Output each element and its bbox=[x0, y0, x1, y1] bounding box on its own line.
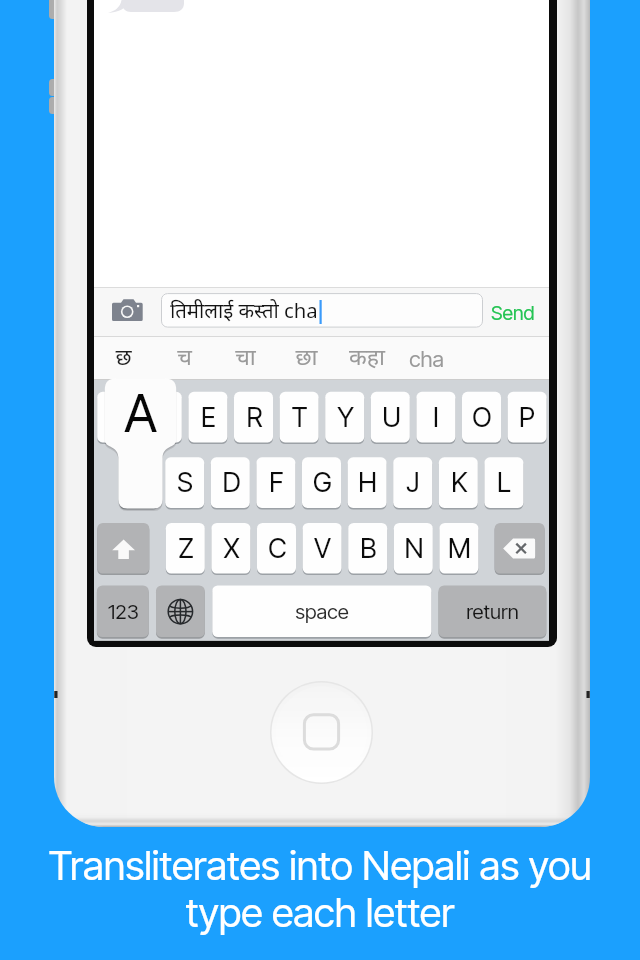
button[interactable]: Key A bbox=[120, 457, 159, 508]
staticText: च bbox=[177, 344, 192, 374]
staticText: T bbox=[291, 401, 308, 434]
button[interactable]: Return bbox=[438, 586, 546, 638]
button[interactable]: Suggestion chhaa bbox=[277, 337, 338, 380]
staticText: U bbox=[382, 401, 401, 434]
button[interactable]: Key E bbox=[188, 392, 227, 443]
button[interactable]: Key P bbox=[508, 392, 547, 443]
staticText: N bbox=[404, 532, 424, 565]
staticText: छा bbox=[295, 344, 318, 374]
button[interactable]: Send bbox=[487, 294, 546, 328]
button[interactable]: Backspace bbox=[495, 523, 545, 574]
button[interactable]: Key X bbox=[211, 523, 250, 574]
staticText: D bbox=[222, 466, 241, 499]
staticText: H bbox=[358, 466, 377, 499]
button[interactable]: Suggestion kaha bbox=[338, 337, 399, 380]
staticText: Y bbox=[337, 401, 354, 434]
button[interactable]: Key C bbox=[257, 523, 296, 574]
button[interactable]: Shift bbox=[97, 523, 149, 574]
staticText: K bbox=[451, 466, 468, 499]
staticText: A bbox=[124, 382, 157, 445]
button[interactable]: Key U bbox=[371, 392, 410, 443]
button[interactable]: Key J bbox=[393, 457, 432, 508]
staticText: space bbox=[295, 599, 349, 624]
staticText: F bbox=[269, 466, 284, 499]
button[interactable]: Key N bbox=[394, 523, 433, 574]
staticText: कहा bbox=[349, 344, 385, 374]
button[interactable]: Key T bbox=[280, 392, 319, 443]
button[interactable]: Key G bbox=[302, 457, 341, 508]
button[interactable]: Camera bbox=[110, 294, 146, 326]
button[interactable]: Message input field bbox=[162, 294, 483, 328]
staticText: Transliterates into Nepali as you type e… bbox=[20, 841, 620, 951]
button[interactable]: Key M bbox=[439, 523, 478, 574]
button[interactable]: Space bbox=[212, 586, 432, 638]
staticText: L bbox=[497, 466, 511, 499]
button[interactable]: Key O bbox=[462, 392, 501, 443]
staticText: J bbox=[406, 466, 420, 499]
staticText: Send bbox=[491, 301, 535, 325]
staticText: O bbox=[472, 401, 492, 434]
button[interactable]: Key I bbox=[416, 392, 455, 443]
staticText: I bbox=[433, 401, 439, 434]
staticText: return bbox=[466, 599, 519, 624]
staticText: W bbox=[151, 401, 176, 434]
staticText: 123 bbox=[108, 599, 139, 624]
staticText: E bbox=[201, 401, 216, 434]
button[interactable]: Switch keyboard language bbox=[155, 586, 206, 638]
staticText: तिमीलाई कस्तो cha bbox=[170, 300, 318, 326]
button[interactable]: Key D bbox=[211, 457, 250, 508]
button[interactable]: Key R bbox=[234, 392, 273, 443]
button[interactable]: Key K bbox=[439, 457, 478, 508]
button[interactable]: Key Z bbox=[166, 523, 205, 574]
button[interactable]: Home bbox=[275, 688, 365, 778]
staticText: छ bbox=[115, 344, 132, 374]
staticText: V bbox=[314, 532, 331, 565]
button[interactable]: Key F bbox=[256, 457, 295, 508]
staticText: G bbox=[313, 466, 332, 499]
button[interactable]: Key Y bbox=[325, 392, 364, 443]
staticText: Z bbox=[178, 532, 194, 565]
staticText: X bbox=[223, 532, 240, 565]
staticText: C bbox=[268, 532, 287, 565]
staticText: M bbox=[448, 532, 471, 565]
button[interactable]: Key W bbox=[143, 392, 182, 443]
button[interactable]: Key H bbox=[348, 457, 387, 508]
button[interactable]: Suggestion chaa bbox=[216, 337, 277, 380]
staticText: R bbox=[246, 401, 263, 434]
staticText: cha bbox=[409, 346, 444, 373]
button[interactable]: Key B bbox=[348, 523, 387, 574]
staticText: S bbox=[177, 466, 193, 499]
button[interactable]: Key L bbox=[484, 457, 523, 508]
button[interactable]: Suggestion cha bbox=[399, 337, 460, 380]
staticText: B bbox=[360, 532, 377, 565]
button[interactable]: Key Q bbox=[97, 392, 136, 443]
staticText: Q bbox=[107, 401, 127, 434]
button[interactable]: Suggestion chha bbox=[94, 337, 155, 380]
button[interactable]: Numbers bbox=[97, 586, 149, 638]
button[interactable]: Key V bbox=[303, 523, 342, 574]
button[interactable]: Key S bbox=[165, 457, 204, 508]
button[interactable]: Suggestion cha bbox=[155, 337, 216, 380]
staticText: P bbox=[519, 401, 535, 434]
staticText: चा bbox=[235, 344, 256, 374]
